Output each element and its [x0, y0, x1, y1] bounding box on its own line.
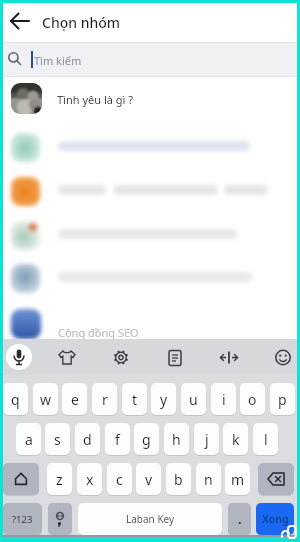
staticText: h — [172, 430, 181, 449]
button[interactable]: c — [107, 463, 132, 495]
staticText: w — [40, 390, 52, 409]
button[interactable] — [56, 347, 78, 369]
button[interactable]: a — [16, 423, 41, 455]
staticText: j — [205, 430, 209, 449]
staticText: Tìm kiếm — [34, 53, 82, 68]
button[interactable]: . — [228, 503, 251, 535]
staticText: t — [132, 390, 138, 409]
button[interactable]: Xong — [256, 503, 294, 535]
staticText: r — [102, 390, 108, 409]
staticText: m — [231, 470, 245, 489]
button[interactable]: k — [223, 423, 248, 455]
button[interactable]: o — [240, 383, 265, 415]
staticText: k — [232, 430, 240, 449]
button[interactable] — [3, 463, 39, 495]
button[interactable] — [164, 347, 186, 369]
button[interactable] — [0, 171, 300, 215]
button[interactable] — [258, 463, 294, 495]
staticText: f — [115, 430, 120, 449]
staticText: g — [142, 430, 151, 449]
button[interactable]: u — [181, 383, 206, 415]
staticText: b — [174, 470, 183, 489]
staticText: s — [54, 430, 61, 449]
button[interactable]: h — [164, 423, 189, 455]
staticText: Cộng đồng SEO — [58, 325, 139, 340]
staticText: c — [116, 470, 123, 489]
button[interactable]: s — [45, 423, 70, 455]
staticText: . — [238, 510, 242, 528]
button[interactable]: ?123 — [3, 503, 42, 535]
button[interactable] — [6, 344, 32, 370]
staticText: e — [71, 390, 79, 409]
staticText: Xong — [262, 512, 289, 526]
button[interactable]: m — [225, 463, 250, 495]
button[interactable] — [0, 127, 300, 171]
button[interactable]: p — [270, 383, 295, 415]
button[interactable] — [6, 7, 34, 35]
staticText: l — [264, 430, 268, 449]
staticText: x — [86, 470, 94, 489]
staticText: Tình yêu là gì ? — [57, 92, 133, 107]
staticText: y — [160, 390, 168, 409]
button[interactable]: q — [3, 383, 28, 415]
staticText: v — [145, 470, 153, 489]
button[interactable]: i — [211, 383, 236, 415]
button[interactable] — [48, 503, 72, 535]
button[interactable]: e — [62, 383, 87, 415]
staticText: a — [25, 430, 33, 449]
button[interactable] — [272, 347, 294, 369]
button[interactable]: b — [166, 463, 191, 495]
button[interactable]: l — [253, 423, 278, 455]
button[interactable]: Tìm kiếm — [0, 42, 300, 77]
button[interactable] — [110, 347, 132, 369]
staticText: p — [278, 390, 287, 409]
button[interactable]: Laban Key — [78, 503, 222, 535]
button[interactable]: r — [92, 383, 117, 415]
staticText: q — [11, 390, 20, 409]
staticText: u — [189, 390, 198, 409]
button[interactable]: n — [196, 463, 221, 495]
button[interactable]: f — [105, 423, 130, 455]
staticText: ?123 — [12, 513, 33, 526]
button[interactable]: g — [134, 423, 159, 455]
button[interactable] — [218, 347, 240, 369]
staticText: z — [56, 470, 63, 489]
staticText: d — [83, 430, 92, 449]
staticText: Laban Key — [126, 512, 175, 526]
button[interactable]: j — [194, 423, 219, 455]
staticText: i — [222, 390, 226, 409]
button[interactable] — [0, 303, 300, 347]
button[interactable]: w — [33, 383, 58, 415]
button[interactable]: x — [77, 463, 102, 495]
button[interactable]: t — [122, 383, 147, 415]
staticText: n — [204, 470, 213, 489]
staticText: Chọn nhóm — [42, 13, 121, 32]
button[interactable]: d — [75, 423, 100, 455]
button[interactable]: v — [136, 463, 161, 495]
button[interactable] — [0, 215, 300, 259]
button[interactable] — [0, 259, 300, 303]
button[interactable]: z — [47, 463, 72, 495]
staticText: o — [248, 390, 257, 409]
button[interactable] — [0, 78, 300, 122]
button[interactable]: y — [151, 383, 176, 415]
